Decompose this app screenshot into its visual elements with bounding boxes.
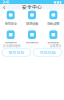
button[interactable]: 安全检测: [21, 30, 43, 46]
staticText: 紧急联系: [47, 41, 59, 46]
staticText: 安全检测: [26, 41, 38, 46]
button[interactable]: 查看更多: [49, 43, 61, 48]
button[interactable]: 紧急联系: [43, 30, 64, 46]
button[interactable]: 风险扫描: [33, 48, 62, 56]
button[interactable]: Back: [1, 4, 6, 10]
staticText: 查看更多: [49, 43, 61, 48]
staticText: 安全服务推荐: [2, 43, 20, 48]
staticText: 风险扫描: [40, 50, 56, 55]
staticText: ‹: [3, 3, 5, 11]
staticText: 安全中心: [22, 3, 42, 10]
button[interactable]: 登录设备: [21, 11, 43, 26]
button[interactable]: 账号体检: [2, 48, 31, 56]
button[interactable]: 账号安全: [0, 11, 21, 26]
staticText: 隐私设置: [47, 21, 59, 26]
button[interactable]: 隐私设置: [43, 11, 64, 26]
staticText: 账号体检: [8, 50, 24, 55]
staticText: 9:41: [2, 0, 9, 4]
staticText: 支付安全: [5, 41, 17, 46]
staticText: 登录设备: [26, 21, 38, 26]
staticText: 账号安全: [5, 21, 17, 26]
staticText: ◼◼▮: [53, 0, 61, 4]
button[interactable]: 支付安全: [0, 30, 21, 46]
